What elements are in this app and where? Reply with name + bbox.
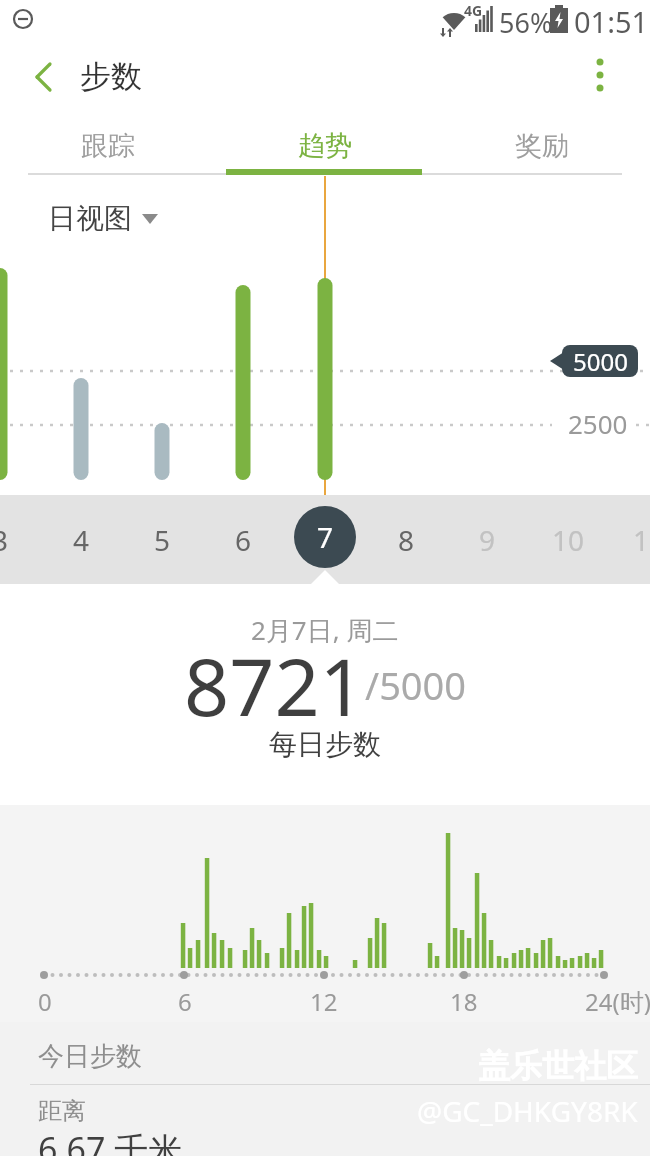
staticText: 奖励	[515, 129, 569, 163]
button[interactable]: 奖励	[433, 116, 650, 175]
staticText: 趋势	[298, 129, 352, 163]
staticText: 24(时)	[585, 985, 650, 1018]
staticText: 每日步数	[269, 727, 381, 762]
staticText: 步数	[80, 57, 142, 96]
button[interactable]: 7	[294, 506, 356, 568]
staticText: 01:51	[574, 2, 649, 41]
staticText: 7	[317, 518, 334, 556]
staticText: 56%	[499, 4, 553, 41]
staticText: 10	[552, 521, 585, 559]
staticText: 2500	[568, 406, 628, 441]
button[interactable]: 8	[366, 495, 446, 584]
staticText: 0	[38, 985, 52, 1018]
staticText: 日视图	[48, 201, 132, 236]
staticText: 6	[178, 985, 192, 1018]
staticText: 12	[310, 985, 338, 1018]
button[interactable]: 6	[203, 495, 283, 584]
button[interactable]: 跟踪	[0, 116, 216, 175]
staticText: 距离	[38, 1096, 86, 1126]
staticText: 8721	[184, 632, 365, 720]
staticText: 18	[450, 985, 478, 1018]
staticText: 4G	[464, 1, 483, 20]
staticText: @GC_DHKGY8RK	[417, 1092, 638, 1130]
staticText: 今日步数	[38, 1040, 142, 1073]
staticText: 6	[235, 521, 252, 559]
button[interactable]	[24, 58, 68, 98]
button[interactable]: 趋势	[216, 116, 433, 175]
button[interactable]: 4	[41, 495, 121, 584]
staticText: 盖乐世社区	[478, 1046, 638, 1086]
button[interactable]: 3	[0, 495, 40, 584]
staticText: 6.67 千米	[38, 1126, 183, 1156]
staticText: 5	[154, 521, 171, 559]
button[interactable]: 9	[447, 495, 527, 584]
staticText: 9	[479, 521, 496, 559]
button[interactable]: 5	[122, 495, 202, 584]
button[interactable]	[578, 54, 622, 98]
staticText: 2月7日, 周二	[251, 612, 399, 648]
staticText: 跟踪	[81, 129, 135, 163]
staticText: /5000	[365, 659, 467, 711]
staticText: 5000	[573, 345, 628, 377]
staticText: 4	[73, 521, 90, 559]
staticText: 3	[0, 521, 9, 559]
button[interactable]: 10	[528, 495, 608, 584]
staticText: 8	[398, 521, 415, 559]
button[interactable]: 日视图	[48, 196, 158, 240]
button[interactable]: 11	[609, 495, 650, 584]
staticText: 11	[633, 521, 650, 559]
